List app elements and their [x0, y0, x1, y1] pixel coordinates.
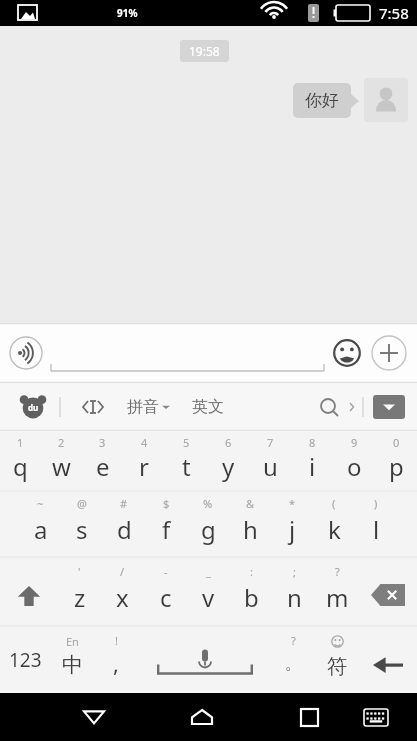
staticText: c — [160, 581, 172, 614]
button[interactable]: # — [103, 492, 145, 557]
staticText: 1 — [17, 435, 24, 450]
staticText: 3 — [99, 435, 106, 450]
button[interactable]: @ — [61, 492, 103, 557]
button[interactable]: % — [187, 492, 229, 557]
staticText: ( — [332, 496, 336, 511]
button[interactable]: ( — [313, 492, 355, 557]
staticText: & — [246, 496, 255, 511]
staticText: 0 — [393, 435, 400, 450]
button[interactable]: $ — [145, 492, 187, 557]
staticText: j — [289, 513, 296, 546]
button[interactable]: Back — [69, 693, 118, 741]
staticText: 123 — [9, 647, 42, 673]
staticText: _ — [206, 564, 211, 579]
staticText: 7:58 — [379, 3, 409, 23]
staticText: w — [52, 450, 71, 483]
button[interactable]: ? — [316, 558, 359, 626]
button[interactable]: 123 — [0, 627, 50, 693]
staticText: f — [162, 513, 171, 546]
staticText: l — [373, 513, 380, 546]
staticText: % — [203, 496, 213, 511]
button[interactable]: Space — [138, 627, 271, 693]
staticText: o — [347, 450, 362, 483]
staticText: m — [326, 581, 349, 614]
button[interactable]: _ — [187, 558, 230, 626]
button[interactable]: Avatar — [364, 78, 408, 122]
button[interactable]: / — [101, 558, 144, 626]
button[interactable] — [50, 331, 325, 375]
staticText: @ — [77, 496, 87, 511]
button[interactable]: More — [367, 331, 411, 375]
button[interactable]: Shift — [0, 558, 58, 626]
staticText: 。 — [285, 654, 301, 674]
button[interactable]: Backspace — [359, 558, 417, 626]
button[interactable]: Voice message — [6, 333, 46, 373]
staticText: : — [250, 564, 253, 579]
staticText: 英文 — [192, 397, 224, 417]
button[interactable]: Recent apps — [285, 693, 334, 741]
button[interactable]: 0 — [375, 431, 417, 491]
staticText: 2 — [58, 435, 65, 450]
staticText: y — [222, 450, 235, 483]
staticText: 5 — [183, 435, 190, 450]
button[interactable]: Home — [177, 693, 226, 741]
button[interactable]: Baidu input — [16, 390, 50, 424]
button[interactable]: 你好 — [293, 78, 359, 122]
button[interactable]: 6 — [207, 431, 249, 491]
staticText: ? — [291, 633, 296, 648]
staticText: ! — [115, 633, 118, 648]
staticText: i — [309, 450, 316, 483]
button[interactable]: Search — [312, 390, 346, 424]
staticText: v — [202, 581, 215, 614]
button[interactable]: 7 — [249, 431, 291, 491]
button[interactable]: Hide keyboard — [373, 395, 405, 419]
staticText: 19:58 — [189, 43, 220, 59]
staticText: d — [117, 513, 132, 546]
button[interactable]: 5 — [165, 431, 207, 491]
staticText: , — [113, 648, 119, 678]
button[interactable]: Enter — [359, 627, 417, 693]
staticText: 6 — [225, 435, 232, 450]
staticText: ? — [335, 564, 340, 579]
staticText: a — [34, 513, 48, 546]
staticText: / — [120, 564, 125, 579]
button[interactable]: Emoji — [327, 333, 367, 373]
staticText: b — [244, 581, 259, 614]
button[interactable]: Switch keyboard — [351, 693, 400, 741]
button[interactable]: En — [50, 627, 94, 693]
staticText: ) — [374, 496, 378, 511]
button[interactable]: & — [229, 492, 271, 557]
staticText: h — [243, 513, 258, 546]
button[interactable]: 英文 — [192, 397, 224, 417]
button[interactable]: ! — [94, 627, 138, 693]
button[interactable]: * — [271, 492, 313, 557]
button[interactable]: 符 — [315, 627, 359, 693]
button[interactable]: - — [144, 558, 187, 626]
button[interactable]: ; — [273, 558, 316, 626]
staticText: ; — [293, 564, 296, 579]
button[interactable]: 1 — [0, 431, 41, 491]
staticText: 91% — [117, 6, 138, 20]
button[interactable]: 8 — [291, 431, 333, 491]
staticText: s — [76, 513, 88, 546]
staticText: du — [28, 402, 39, 413]
staticText: x — [116, 581, 129, 614]
button[interactable]: : — [230, 558, 273, 626]
button[interactable]: 9 — [333, 431, 375, 491]
button[interactable]: 拼音 — [127, 397, 170, 417]
button[interactable]: ~ — [20, 492, 61, 557]
staticText: 中 — [62, 652, 83, 678]
button[interactable]: ? — [271, 627, 315, 693]
button[interactable]: ) — [355, 492, 397, 557]
button[interactable]: Cursor control — [75, 389, 111, 425]
staticText: 7 — [267, 435, 274, 450]
button[interactable]: 4 — [123, 431, 165, 491]
staticText: 拼音 — [127, 397, 159, 417]
button[interactable]: 2 — [41, 431, 82, 491]
button[interactable]: 3 — [82, 431, 123, 491]
staticText: 符 — [327, 654, 347, 679]
staticText: 8 — [309, 435, 316, 450]
staticText: $ — [163, 496, 170, 511]
staticText: En — [66, 634, 79, 649]
button[interactable]: ' — [58, 558, 101, 626]
